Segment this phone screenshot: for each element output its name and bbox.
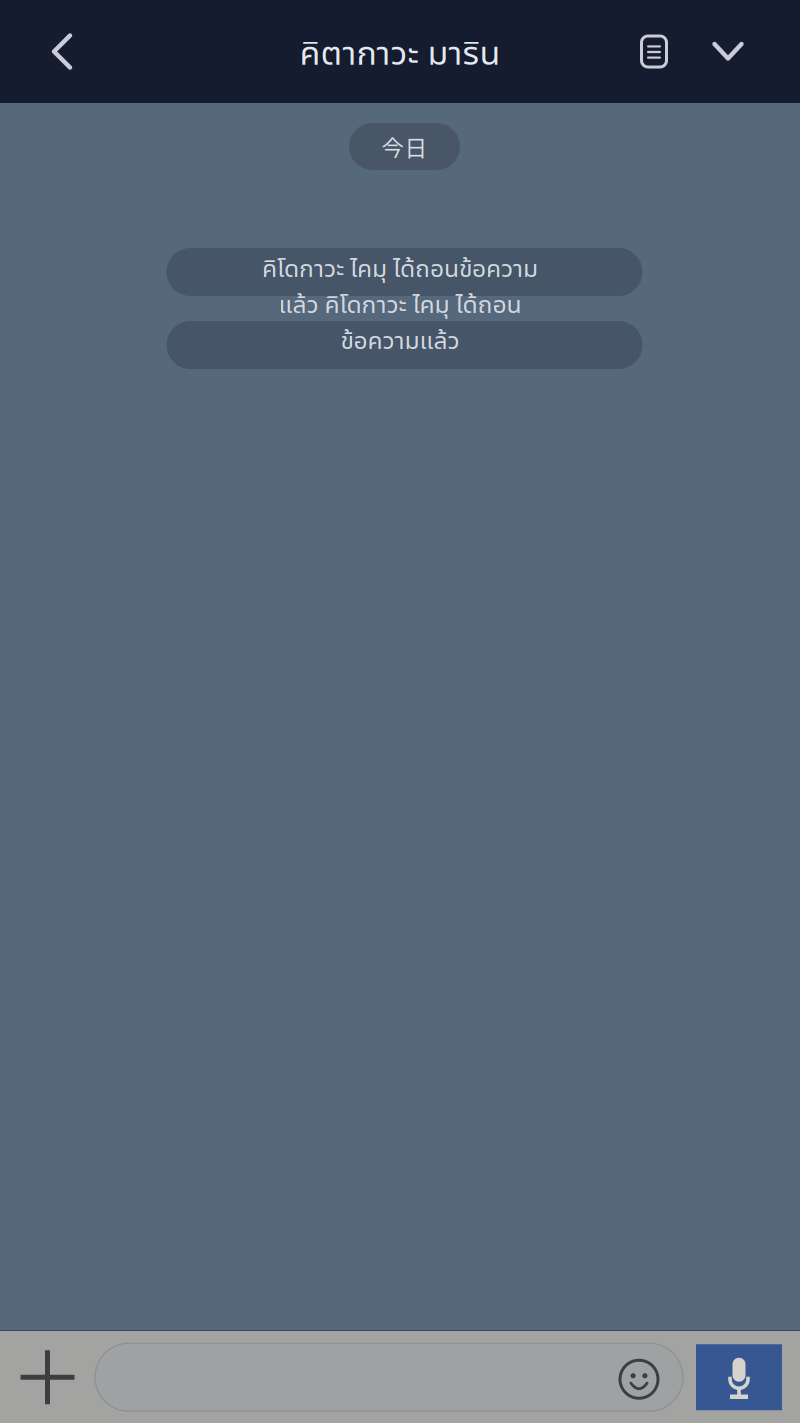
button[interactable]: Emoji	[605, 1343, 673, 1411]
staticText: ข้อความแล้ว	[340, 323, 459, 356]
button[interactable]: Record voice message	[696, 1344, 782, 1410]
button[interactable]: Back	[0, 0, 124, 103]
button[interactable]: Attach	[0, 1331, 95, 1423]
staticText: แล้ว คิโดกาวะ ไคมุ ได้ถอน	[278, 287, 521, 320]
staticText: 今日	[381, 130, 427, 163]
button[interactable]: Notes	[616, 0, 692, 103]
staticText: คิโดกาวะ ไคมุ ได้ถอนข้อความ	[262, 251, 538, 284]
staticText: คิตากาวะ มาริน	[299, 28, 500, 75]
button[interactable]: More options	[692, 0, 764, 103]
